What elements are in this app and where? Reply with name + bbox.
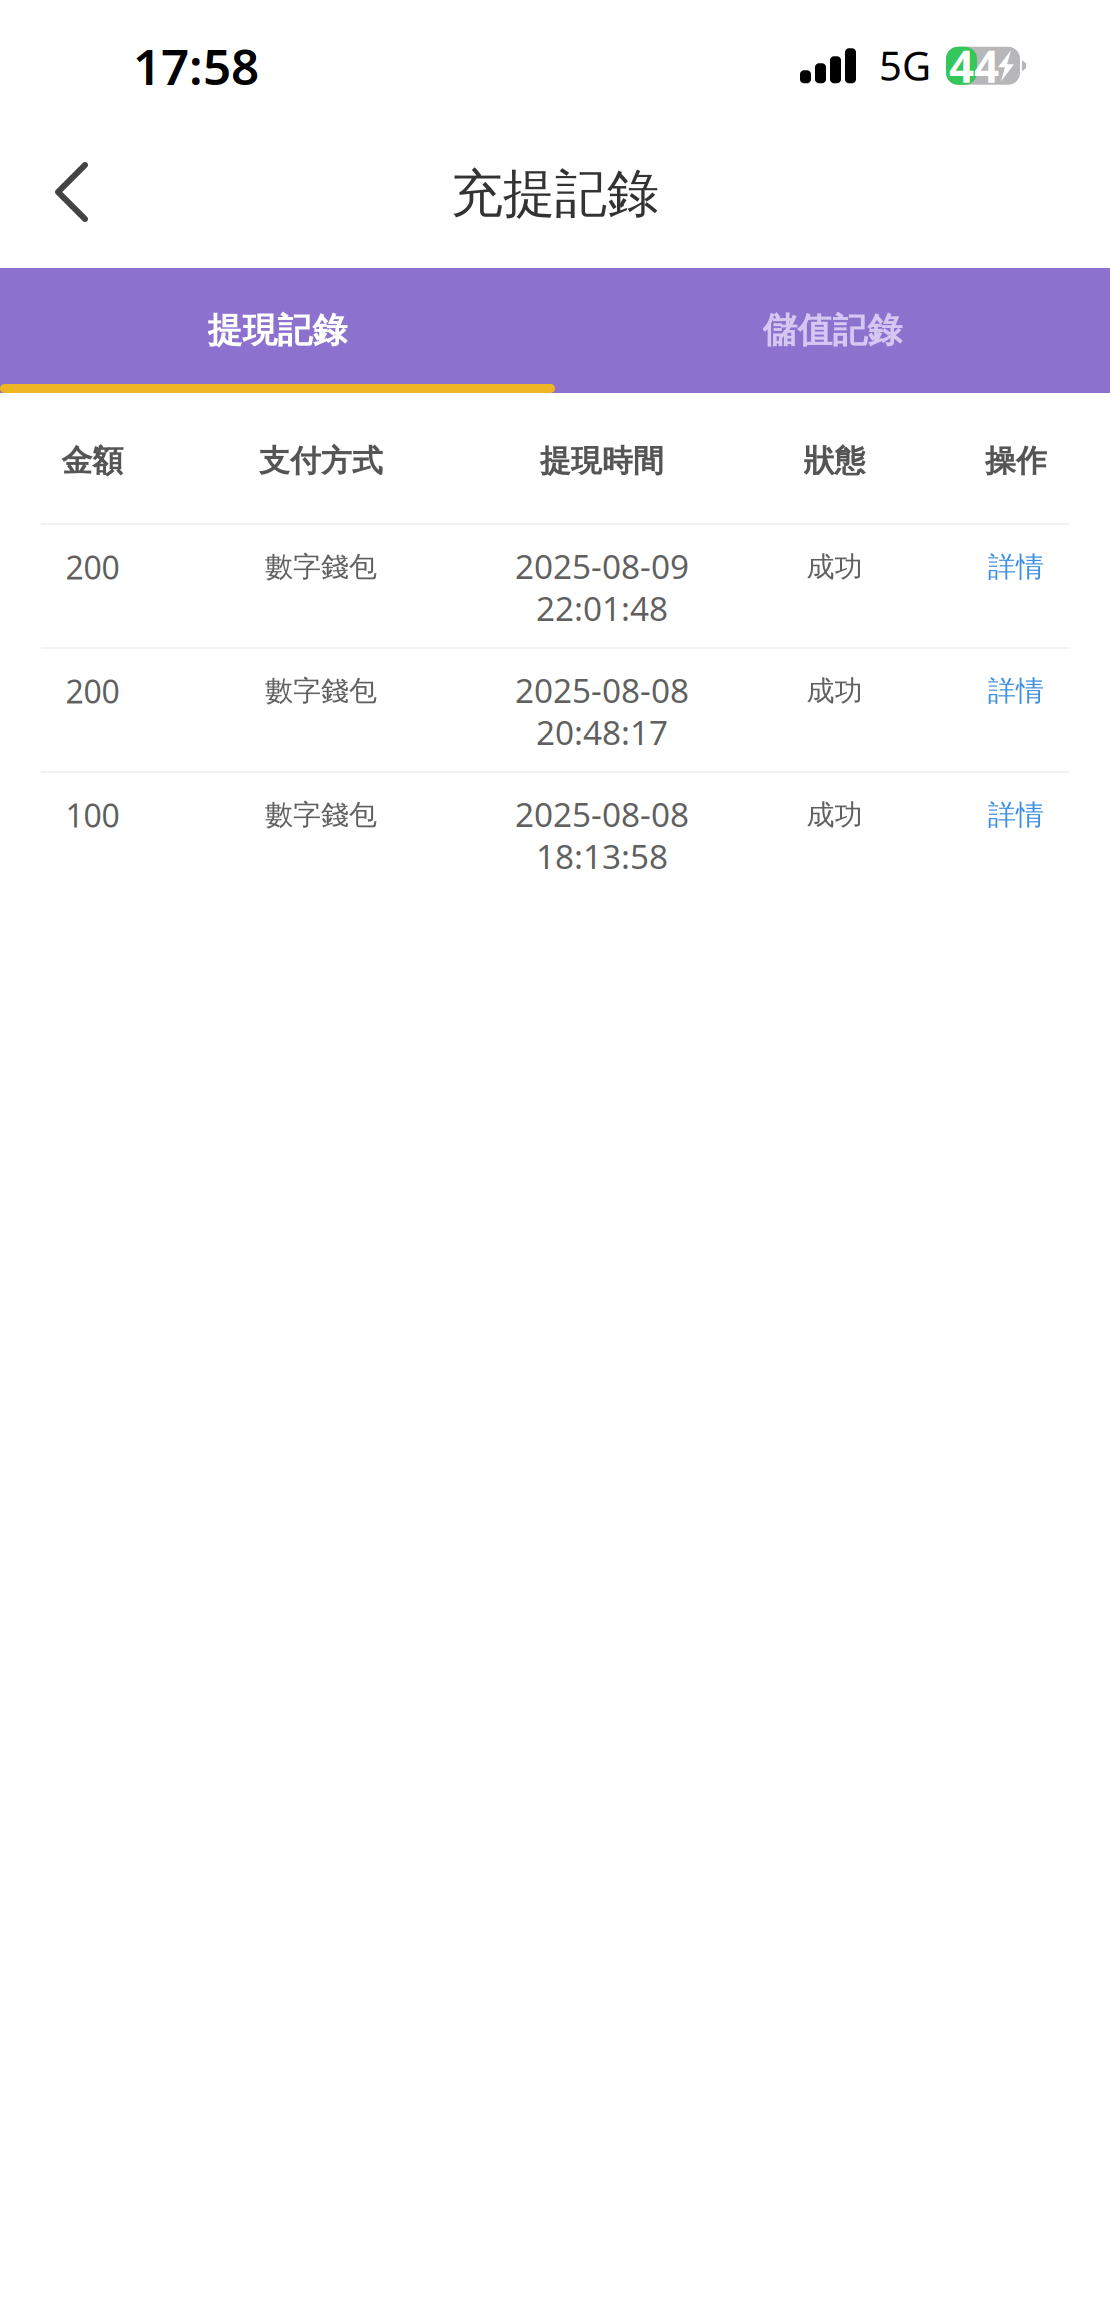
staticText: 詳情 <box>988 550 1044 584</box>
staticText: 22:01:48 <box>536 586 668 630</box>
staticText: 200 <box>65 546 119 588</box>
staticText: 成功 <box>806 674 862 708</box>
staticText: 提現記錄 <box>207 309 347 352</box>
staticText: 17:58 <box>133 33 259 98</box>
staticText: 數字錢包 <box>265 550 377 584</box>
staticText: 數字錢包 <box>265 798 377 832</box>
staticText: 2025-08-08 <box>515 668 689 712</box>
staticText: 100 <box>65 794 119 836</box>
staticText: 詳情 <box>988 674 1044 708</box>
button[interactable]: Back <box>26 147 116 237</box>
button[interactable]: 詳情 <box>922 793 1110 877</box>
staticText: 支付方式 <box>259 442 383 480</box>
button[interactable]: 詳情 <box>922 669 1110 753</box>
staticText: 2025-08-09 <box>515 544 689 588</box>
button[interactable]: 提現記錄 <box>0 268 555 393</box>
staticText: 金額 <box>61 442 123 480</box>
staticText: 成功 <box>806 550 862 584</box>
staticText: 數字錢包 <box>265 674 377 708</box>
staticText: 18:13:58 <box>536 834 668 878</box>
button[interactable]: 詳情 <box>922 545 1110 629</box>
staticText: 2025-08-08 <box>515 792 689 836</box>
staticText: 操作 <box>985 442 1047 480</box>
staticText: 詳情 <box>988 798 1044 832</box>
staticText: 44 <box>949 36 999 95</box>
staticText: 20:48:17 <box>536 710 668 754</box>
staticText: 200 <box>65 670 119 712</box>
staticText: 成功 <box>806 798 862 832</box>
staticText: 充提記錄 <box>451 162 659 226</box>
button[interactable]: 儲值記錄 <box>555 268 1110 393</box>
staticText: 儲值記錄 <box>762 309 902 352</box>
staticText: 5G <box>879 39 931 92</box>
staticText: 狀態 <box>803 442 865 480</box>
staticText: 提現時間 <box>540 442 664 480</box>
